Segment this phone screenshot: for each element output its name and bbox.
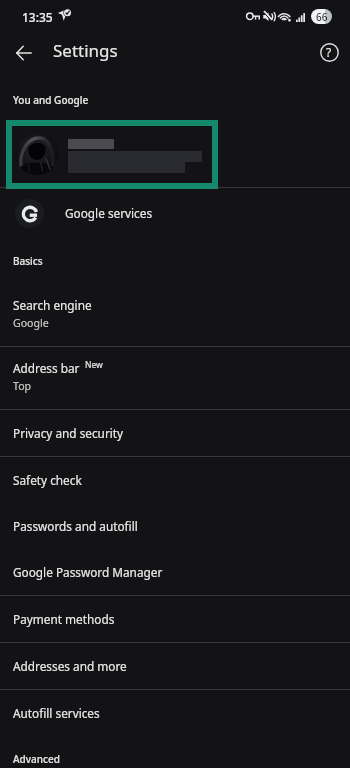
staticText: Passwords and autofill bbox=[13, 518, 138, 534]
button[interactable]: Search engine bbox=[0, 280, 350, 346]
staticText: You and Google bbox=[13, 93, 89, 107]
staticText: Privacy and security bbox=[13, 425, 124, 441]
button[interactable]: Addresses and more bbox=[0, 643, 350, 689]
staticText: 66 bbox=[316, 10, 328, 24]
staticText: Google Password Manager bbox=[13, 564, 163, 580]
button[interactable]: Google services bbox=[0, 188, 350, 238]
staticText: Autofill services bbox=[13, 705, 100, 721]
button[interactable]: Autofill services bbox=[0, 690, 350, 736]
staticText: Top bbox=[13, 379, 32, 393]
staticText: Advanced bbox=[13, 752, 60, 766]
staticText: New bbox=[85, 359, 103, 371]
staticText: Address bar bbox=[13, 360, 80, 376]
staticText: Safety check bbox=[13, 472, 82, 488]
staticText: Google services bbox=[65, 205, 153, 221]
button[interactable]: Address bar bbox=[0, 347, 350, 409]
staticText: 13:35 bbox=[22, 9, 53, 25]
button[interactable] bbox=[0, 120, 350, 187]
button[interactable]: Google Password Manager bbox=[0, 549, 350, 595]
button[interactable]: Payment methods bbox=[0, 596, 350, 642]
staticText: Settings bbox=[53, 39, 118, 62]
staticText: Google bbox=[13, 316, 49, 330]
staticText: Payment methods bbox=[13, 611, 115, 627]
staticText: Basics bbox=[13, 254, 43, 268]
staticText: Search engine bbox=[13, 297, 92, 313]
button[interactable]: Help bbox=[312, 35, 346, 69]
button[interactable]: Privacy and security bbox=[0, 410, 350, 456]
staticText: ? bbox=[326, 44, 332, 60]
button[interactable]: Passwords and autofill bbox=[0, 503, 350, 549]
staticText: Addresses and more bbox=[13, 658, 127, 674]
button[interactable]: Safety check bbox=[0, 457, 350, 503]
button[interactable]: Back bbox=[6, 35, 42, 71]
